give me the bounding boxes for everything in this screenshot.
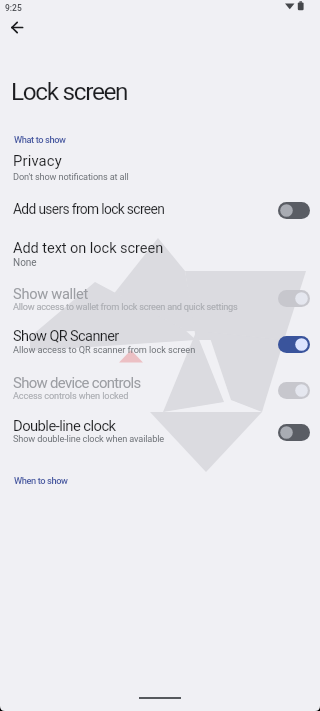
staticText: Allow access to QR scanner from lock scr… [13,344,196,355]
staticText: Add text on lock screen [13,239,164,256]
button[interactable]: Add text on lock screen [0,239,320,269]
staticText: Lock screen [11,77,128,106]
staticText: 9:25 [5,3,22,13]
button[interactable]: Double-line clock [0,417,320,447]
staticText: Don't show notifications at all [13,171,129,182]
staticText: Add users from lock screen [13,201,165,217]
staticText: Show double-line clock when available [13,433,165,444]
staticText: Access controls when locked [13,390,129,401]
button[interactable]: Show QR Scanner [0,328,320,358]
button[interactable] [5,15,29,39]
staticText: None [13,257,37,269]
staticText: Show wallet [13,285,89,302]
staticText: Show QR Scanner [13,328,119,345]
button[interactable]: Show device controls [0,374,320,404]
staticText: What to show [14,134,66,145]
staticText: Allow access to wallet from lock screen … [13,301,238,312]
button[interactable]: Privacy [0,152,320,182]
button[interactable]: Add users from lock screen [0,201,320,223]
staticText: Privacy [13,152,62,169]
staticText: Double-line clock [13,417,116,434]
button[interactable]: Show wallet [0,285,320,315]
staticText: When to show [14,475,68,486]
staticText: Show device controls [13,374,141,391]
